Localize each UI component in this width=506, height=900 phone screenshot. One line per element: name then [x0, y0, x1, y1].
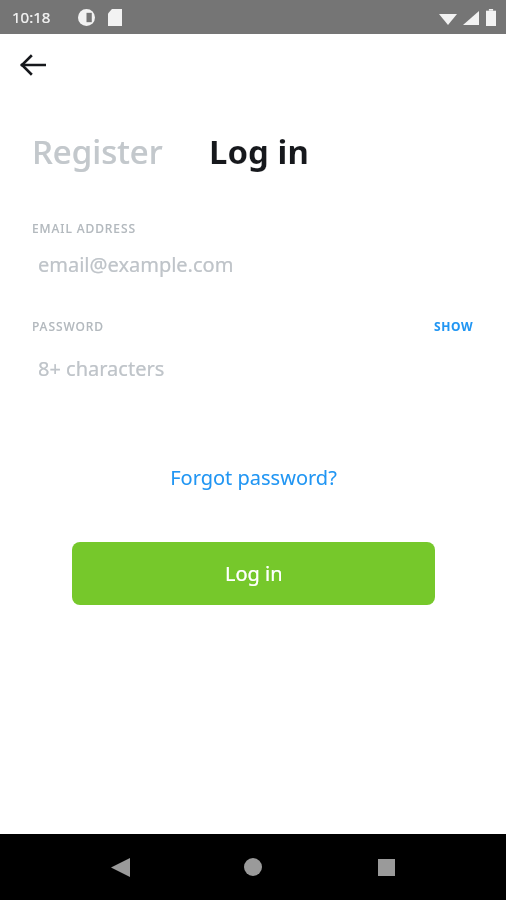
button[interactable]: SHOW: [426, 312, 482, 340]
staticText: SHOW: [434, 318, 474, 334]
button[interactable]: email@example.com: [0, 236, 506, 292]
button[interactable]: 8+ characters: [0, 340, 506, 396]
staticText: email@example.com: [38, 251, 234, 278]
button[interactable]: Back: [10, 42, 56, 88]
button[interactable]: Back: [95, 842, 145, 892]
staticText: 8+ characters: [38, 355, 165, 382]
button[interactable]: Log in: [72, 542, 435, 605]
staticText: EMAIL ADDRESS: [32, 220, 136, 236]
button[interactable]: Forgot password?: [158, 458, 349, 497]
button[interactable]: Recent apps: [361, 842, 411, 892]
staticText: Log in: [225, 560, 283, 587]
staticText: PASSWORD: [32, 318, 104, 334]
button[interactable]: Home: [228, 842, 278, 892]
staticText: Log in: [209, 129, 309, 174]
staticText: Forgot password?: [170, 464, 337, 491]
staticText: Register: [32, 129, 163, 174]
button[interactable]: Register: [30, 125, 165, 178]
staticText: 10:18: [12, 7, 51, 27]
button[interactable]: Log in: [207, 125, 311, 178]
